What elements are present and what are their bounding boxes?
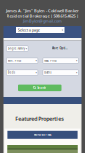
- staticText: Beds: [8, 71, 15, 74]
- staticText: Search: [37, 86, 46, 90]
- staticText: Featured Properties: [15, 115, 64, 122]
- button[interactable]: Search: [18, 85, 61, 91]
- staticText: Max. Price: [44, 59, 57, 62]
- staticText: More Options: [52, 46, 68, 50]
- button[interactable]: Single-Family: [6, 46, 28, 51]
- staticText: ▾: [76, 59, 77, 62]
- staticText: ▾: [62, 28, 63, 31]
- staticText: JimBylen@gmail.com: [23, 18, 62, 23]
- staticText: ▾: [26, 47, 27, 50]
- staticText: ▾: [76, 71, 77, 74]
- staticText: Single-Family: [8, 47, 25, 50]
- button[interactable]: Max. Price: [43, 58, 78, 63]
- button[interactable]: Select a page: [16, 27, 64, 33]
- staticText: Worcester MA: [33, 133, 51, 136]
- staticText: Baths: [44, 71, 51, 74]
- staticText: Select a page: [18, 27, 40, 33]
- staticText: Residential Brokerage | 508-615-4625 |: [6, 13, 78, 18]
- staticText: Min. Price: [8, 59, 22, 62]
- button[interactable]: Beds: [6, 70, 38, 75]
- button[interactable]: Min. Price: [6, 58, 38, 63]
- button[interactable]: Baths: [43, 70, 78, 75]
- button[interactable]: JimBylen@gmail.com: [0, 18, 85, 23]
- staticText: James A. "Jim" Bylen - Coldwell Banker: [6, 8, 79, 13]
